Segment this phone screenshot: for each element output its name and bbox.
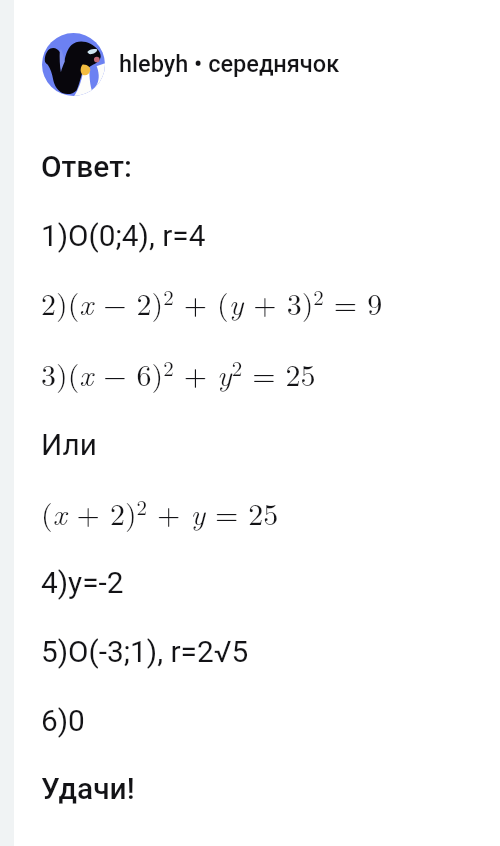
staticText: Или: [41, 427, 97, 462]
staticText: 1)O(0;4), r=4: [41, 218, 206, 253]
button[interactable]: hlebyh • середнячок: [42, 33, 340, 96]
staticText: 4)y=-2: [41, 565, 124, 600]
staticText: 6)0: [41, 703, 85, 738]
staticText: (x + 2)2 + y = 25: [41, 491, 279, 534]
staticText: Удачи!: [41, 771, 135, 806]
staticText: 2)(x − 2)2 + (y + 3)2 = 9: [41, 281, 383, 324]
staticText: hlebyh • середнячок: [119, 50, 340, 78]
staticText: Ответ:: [41, 149, 132, 184]
staticText: 5)O(-3;1), r=2√5: [41, 634, 249, 669]
staticText: 3)(x − 6)2 + y2 = 25: [41, 352, 316, 395]
